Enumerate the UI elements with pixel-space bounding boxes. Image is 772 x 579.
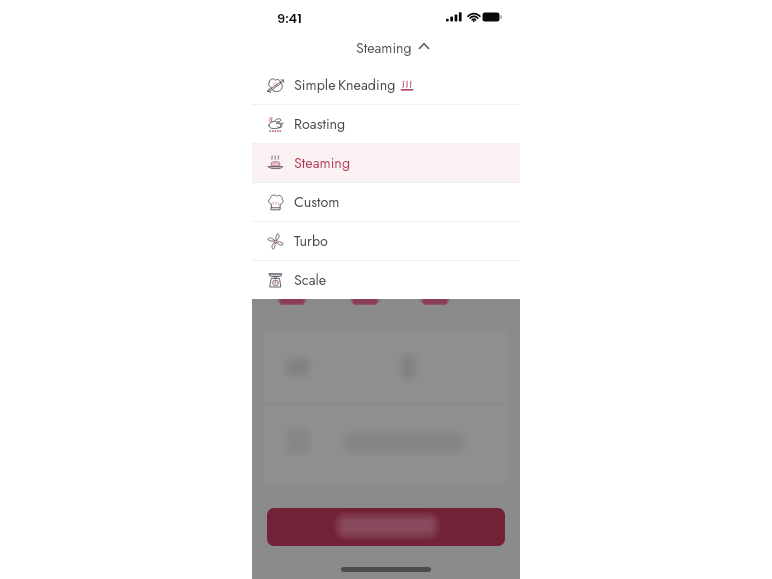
- button[interactable]: [267, 508, 505, 546]
- button[interactable]: Steaming: [252, 36, 520, 66]
- staticText: Turbo: [294, 231, 328, 252]
- staticText: Scale: [294, 270, 327, 291]
- button[interactable]: Turbo: [252, 222, 520, 260]
- staticText: 9:41: [277, 9, 302, 27]
- staticText: Custom: [294, 192, 340, 213]
- staticText: Roasting: [294, 114, 346, 135]
- button[interactable]: Steaming: [252, 144, 520, 182]
- staticText: Steaming: [356, 38, 412, 59]
- button[interactable]: Simple: [252, 66, 520, 104]
- staticText: Steaming: [294, 153, 351, 174]
- other: Home indicator: [341, 567, 431, 572]
- button[interactable]: Custom: [252, 183, 520, 221]
- staticText: Simple: [294, 75, 336, 96]
- button[interactable]: Roasting: [252, 105, 520, 143]
- staticText: Kneading: [338, 75, 396, 96]
- button[interactable]: Scale: [252, 261, 520, 299]
